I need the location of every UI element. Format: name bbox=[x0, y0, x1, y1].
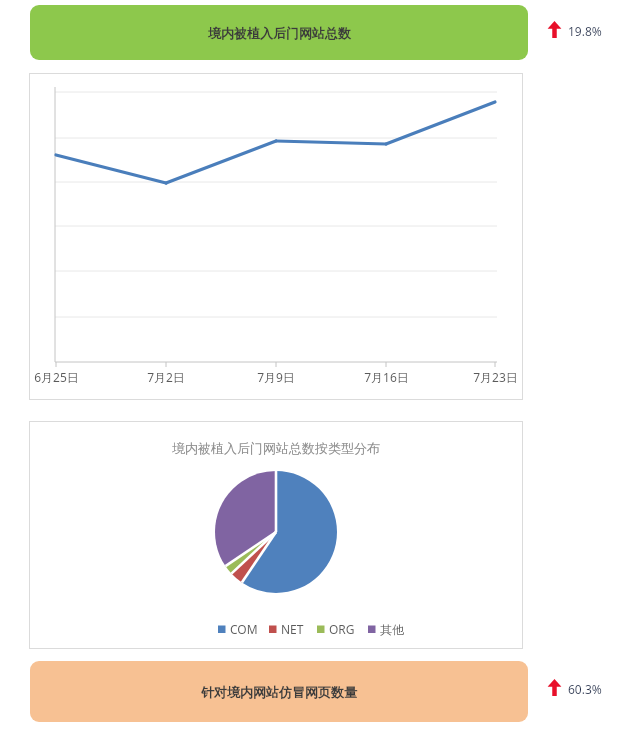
staticText: 其他 bbox=[380, 622, 404, 637]
staticText: 7月23日 bbox=[473, 369, 518, 385]
staticText: 7月16日 bbox=[364, 369, 409, 385]
other: Increase bbox=[547, 21, 562, 38]
button[interactable]: 针对境内网站仿冒网页数量 bbox=[30, 661, 528, 722]
button[interactable]: ORG bbox=[317, 621, 365, 637]
staticText: 19.8% bbox=[568, 23, 602, 39]
staticText: NET bbox=[281, 621, 304, 637]
staticText: COM bbox=[230, 621, 258, 637]
staticText: 境内被植入后门网站总数按类型分布 bbox=[172, 440, 380, 456]
staticText: 7月9日 bbox=[257, 369, 295, 385]
staticText: 针对境内网站仿冒网页数量 bbox=[201, 684, 357, 700]
staticText: 7月2日 bbox=[147, 369, 185, 385]
button[interactable]: 境内被植入后门网站总数 bbox=[30, 5, 528, 60]
staticText: 境内被植入后门网站总数 bbox=[208, 25, 351, 41]
button[interactable]: NET bbox=[269, 621, 315, 637]
staticText: ORG bbox=[329, 621, 355, 637]
staticText: 60.3% bbox=[568, 681, 602, 697]
staticText: 6月25日 bbox=[34, 369, 79, 385]
button[interactable]: COM bbox=[218, 621, 266, 637]
other: Increase bbox=[547, 679, 562, 696]
button[interactable]: 其他 bbox=[368, 621, 410, 637]
